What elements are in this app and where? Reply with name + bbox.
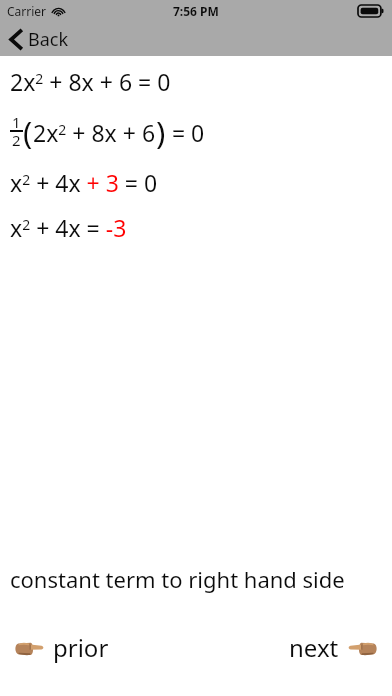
staticText: 2x2 + 8x + 6 = 0	[10, 66, 171, 97]
staticText: 1	[12, 112, 21, 132]
button[interactable]: Previous step	[0, 627, 123, 668]
staticText: Back	[28, 27, 69, 52]
staticText: prior	[53, 631, 109, 664]
other: Previous step	[14, 637, 44, 659]
staticText: x2 + 4x = -3	[10, 212, 127, 243]
staticText: 2	[12, 130, 21, 150]
staticText: constant term to right hand side	[10, 564, 345, 594]
staticText: = 0	[166, 117, 205, 148]
staticText: x2 + 4x + 3 = 0	[10, 167, 158, 198]
staticText: (	[23, 111, 33, 153]
button[interactable]: Back	[0, 23, 83, 56]
button[interactable]: next	[275, 627, 392, 668]
staticText: next	[289, 631, 339, 664]
other: Next step	[348, 637, 378, 659]
staticText: 2x2 + 8x + 6	[33, 117, 156, 148]
staticText: Carrier	[7, 3, 47, 19]
staticText: 7:56 PM	[173, 3, 219, 19]
staticText: )	[156, 111, 166, 153]
